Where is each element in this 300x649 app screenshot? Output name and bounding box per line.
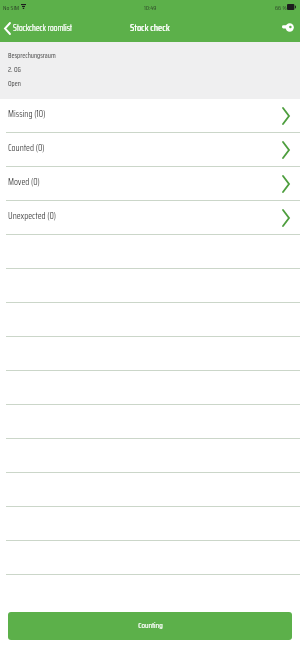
button[interactable]: Stockcheck roomlist — [0, 16, 79, 42]
staticText: 2. OG — [8, 64, 21, 75]
button[interactable]: Unexpected (0) — [0, 201, 300, 235]
button[interactable]: Counted (0) — [0, 133, 300, 167]
staticText: Counted (0) — [8, 141, 45, 155]
staticText: Moved (0) — [8, 175, 40, 189]
staticText: 10:49 — [144, 3, 157, 13]
staticText: Stockcheck roomlist — [13, 21, 73, 34]
staticText: Unexpected (0) — [8, 209, 57, 223]
button[interactable]: Logout — [276, 16, 300, 42]
button[interactable]: Moved (0) — [0, 167, 300, 201]
staticText: Missing (10) — [8, 107, 46, 121]
staticText: Besprechungsraum — [8, 50, 56, 61]
staticText: Open — [8, 78, 21, 89]
staticText: No SIM — [3, 3, 20, 13]
staticText: 66 % — [275, 3, 287, 13]
staticText: Counting — [138, 619, 163, 631]
button[interactable]: Missing (10) — [0, 99, 300, 133]
button[interactable]: Counting — [8, 612, 292, 640]
staticText: Stock check — [130, 20, 170, 35]
